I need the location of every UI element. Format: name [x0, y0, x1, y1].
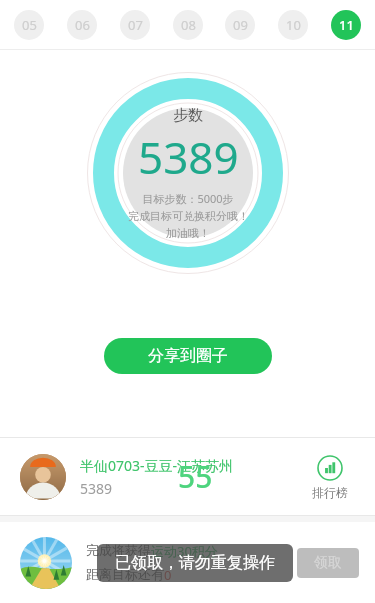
button[interactable]: 分享到圈子 [104, 338, 272, 374]
button[interactable]: 11 [331, 10, 361, 40]
button[interactable] [20, 537, 72, 589]
staticText: 运动30积分 [151, 542, 218, 560]
staticText: 5389 [80, 479, 113, 498]
staticText: 领取 [314, 554, 342, 572]
staticText: 5389 [138, 127, 239, 187]
staticText: 05 [22, 16, 37, 34]
button[interactable]: 05 [14, 10, 44, 40]
button[interactable]: 10 [278, 10, 308, 40]
button[interactable]: 08 [173, 10, 203, 40]
staticText: 06 [75, 16, 90, 34]
staticText: 目标步数：5000步 [142, 191, 234, 206]
staticText: 0 [164, 566, 172, 584]
staticText: 完成目标可兑换积分哦！ [128, 209, 249, 223]
staticText: 55 [178, 456, 213, 497]
button[interactable]: 07 [120, 10, 150, 40]
staticText: 07 [128, 16, 143, 34]
staticText: 11 [339, 16, 354, 34]
staticText: 已领取，请勿重复操作 [115, 553, 275, 573]
button[interactable]: 09 [225, 10, 255, 40]
button[interactable]: 排行榜 [301, 455, 359, 500]
staticText: 加油哦！ [166, 226, 210, 240]
staticText: 完成将获得 [86, 542, 151, 558]
staticText: 步数 [173, 106, 203, 125]
button[interactable]: 领取 [297, 548, 359, 578]
staticText: 排行榜 [312, 485, 348, 500]
staticText: 半仙0703-豆豆-江苏苏州 [80, 456, 234, 475]
staticText: 09 [233, 16, 248, 34]
staticText: 距离目标还有 [86, 566, 164, 582]
staticText: 08 [181, 16, 196, 34]
staticText: 10 [286, 16, 301, 34]
button[interactable] [20, 454, 66, 500]
button[interactable]: 06 [67, 10, 97, 40]
staticText: 分享到圈子 [148, 346, 228, 366]
